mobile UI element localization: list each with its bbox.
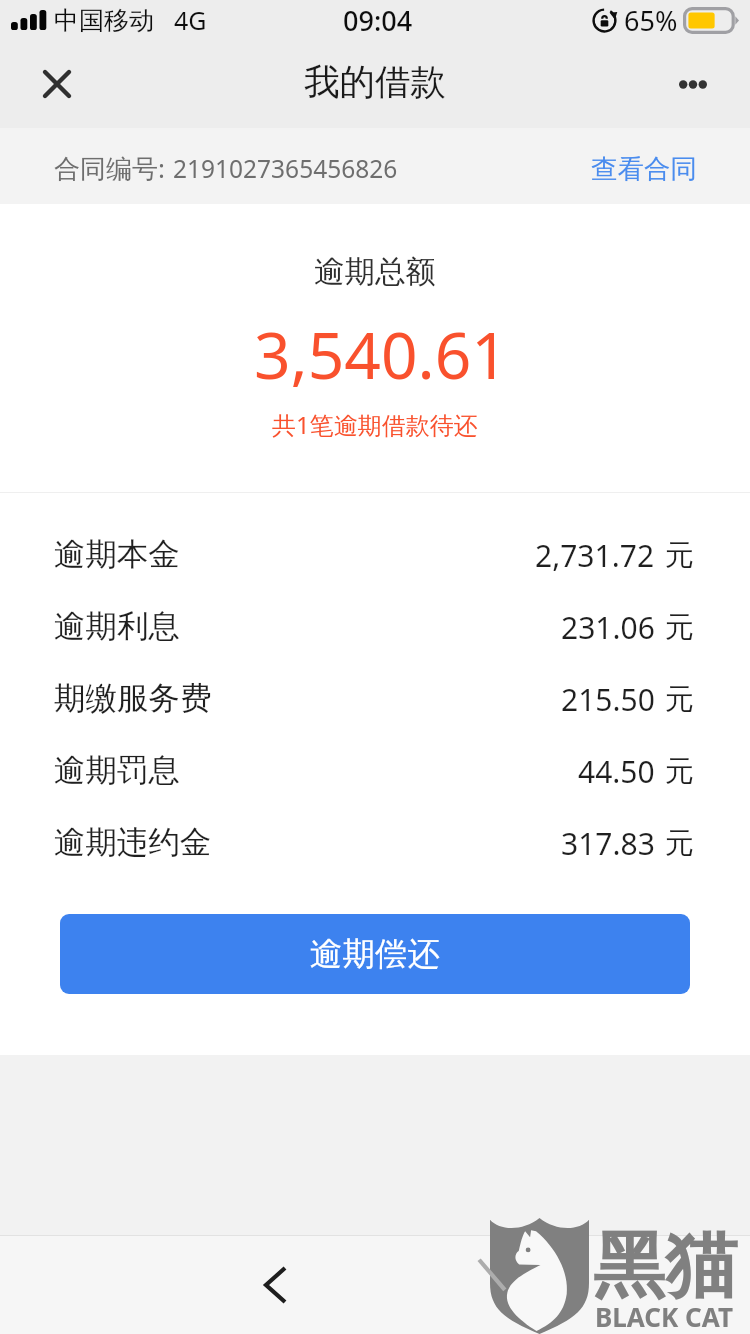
staticText: 我的借款 <box>304 60 446 105</box>
staticText: 231.06 <box>561 607 655 648</box>
staticText: 2,731.72 <box>535 535 655 576</box>
staticText: 黑猫 <box>593 1221 737 1312</box>
button[interactable]: Back <box>240 1250 310 1320</box>
staticText: 65% <box>624 2 678 39</box>
staticText: 期缴服务费 <box>54 679 212 719</box>
staticText: 逾期违约金 <box>54 823 212 863</box>
staticText: 09:04 <box>343 2 413 39</box>
staticText: 逾期偿还 <box>310 934 440 975</box>
staticText: 元 <box>665 753 694 790</box>
staticText: BLACK CAT <box>595 1299 733 1334</box>
staticText: 44.50 <box>578 751 655 792</box>
staticText: 查看合同 <box>591 152 697 185</box>
staticText: 逾期罚息 <box>54 751 180 791</box>
staticText: 元 <box>665 681 694 718</box>
staticText: 逾期总额 <box>314 253 436 291</box>
staticText: 元 <box>665 825 694 862</box>
staticText: 4G <box>174 3 207 37</box>
button[interactable]: 逾期偿还 <box>60 914 690 994</box>
staticText: 逾期利息 <box>54 607 180 647</box>
staticText: 2191027365456826 <box>173 152 398 185</box>
staticText: 元 <box>665 609 694 646</box>
button[interactable]: 逾期违约金 <box>0 807 750 879</box>
button[interactable]: 逾期本金 <box>0 519 750 591</box>
staticText: 中国移动 <box>54 5 154 36</box>
button[interactable]: 逾期罚息 <box>0 735 750 807</box>
staticText: 317.83 <box>561 823 655 864</box>
button[interactable]: 期缴服务费 <box>0 663 750 735</box>
staticText: 215.50 <box>561 679 655 720</box>
staticText: 3,540.61 <box>254 311 508 398</box>
button[interactable]: 查看合同 <box>591 144 697 189</box>
staticText: 元 <box>665 537 694 574</box>
button[interactable]: More options <box>638 48 750 128</box>
staticText: 共1笔逾期借款待还 <box>272 408 478 441</box>
staticText: 合同编号: <box>54 150 165 186</box>
button[interactable]: 逾期利息 <box>0 591 750 663</box>
button[interactable]: Close <box>0 48 112 128</box>
staticText: 逾期本金 <box>54 535 180 575</box>
